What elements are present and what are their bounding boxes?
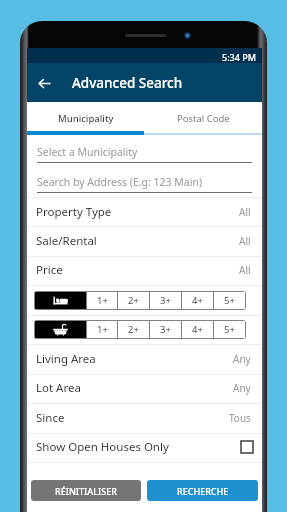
button[interactable]: Living Area xyxy=(27,345,262,373)
staticText: Municipality xyxy=(58,112,114,125)
button[interactable]: Postal Code xyxy=(144,102,262,135)
staticText: Since xyxy=(36,410,65,426)
staticText: RÉINITIALISER xyxy=(55,485,117,497)
button[interactable]: 4+ xyxy=(182,321,213,338)
staticText: All xyxy=(239,234,251,248)
staticText: Any xyxy=(233,381,251,395)
staticText: Any xyxy=(233,352,251,366)
button[interactable]: Municipality xyxy=(27,102,144,135)
staticText: 2+ xyxy=(128,323,139,336)
staticText: Postal Code xyxy=(177,112,230,125)
staticText: 2+ xyxy=(128,294,139,307)
staticText: 4+ xyxy=(192,323,203,336)
button[interactable]: 4+ xyxy=(182,292,213,309)
button[interactable]: Show Open Houses Only xyxy=(27,433,262,461)
staticText: 5+ xyxy=(224,294,235,307)
button[interactable]: Back xyxy=(31,70,57,96)
button[interactable]: 2+ xyxy=(118,292,149,309)
button[interactable]: RECHERCHE xyxy=(147,480,258,501)
staticText: 3+ xyxy=(160,294,171,307)
button[interactable]: 3+ xyxy=(150,321,181,338)
staticText: Living Area xyxy=(36,351,96,367)
staticText: 1+ xyxy=(97,323,108,336)
button[interactable]: 2+ xyxy=(118,321,149,338)
staticText: 5:34 PM xyxy=(222,51,256,63)
staticText: Tous xyxy=(229,411,251,425)
staticText: Property Type xyxy=(36,204,112,220)
button[interactable]: 5+ xyxy=(214,292,245,309)
button[interactable]: 5+ xyxy=(214,321,245,338)
staticText: Select a Municipality xyxy=(37,145,138,159)
staticText: 4+ xyxy=(192,294,203,307)
staticText: Lot Area xyxy=(36,380,81,396)
staticText: Search by Address (E.g: 123 Main) xyxy=(37,175,203,189)
button[interactable]: Sale/Rental xyxy=(27,227,262,255)
staticText: 5+ xyxy=(224,323,235,336)
staticText: Advanced Search xyxy=(72,74,183,92)
button[interactable]: Bathrooms xyxy=(35,321,86,338)
other: Show open houses only xyxy=(241,441,253,453)
button[interactable]: Lot Area xyxy=(27,374,262,402)
staticText: Show Open Houses Only xyxy=(36,439,169,455)
button[interactable]: Property Type xyxy=(27,198,262,226)
button[interactable]: Search by Address (E.g: 123 Main) xyxy=(27,173,262,193)
button[interactable]: Price xyxy=(27,256,262,284)
button[interactable]: RÉINITIALISER xyxy=(31,480,141,501)
button[interactable]: 3+ xyxy=(150,292,181,309)
button[interactable]: Bedrooms xyxy=(35,292,86,309)
staticText: All xyxy=(239,263,251,277)
staticText: RECHERCHE xyxy=(177,485,229,497)
button[interactable]: Select a Municipality xyxy=(27,143,262,163)
staticText: 3+ xyxy=(160,323,171,336)
button[interactable]: Since xyxy=(27,404,262,432)
staticText: All xyxy=(239,205,251,219)
staticText: 1+ xyxy=(97,294,108,307)
button[interactable]: 1+ xyxy=(87,321,117,338)
staticText: Price xyxy=(36,262,63,278)
button[interactable]: 1+ xyxy=(87,292,117,309)
staticText: Sale/Rental xyxy=(36,233,97,249)
